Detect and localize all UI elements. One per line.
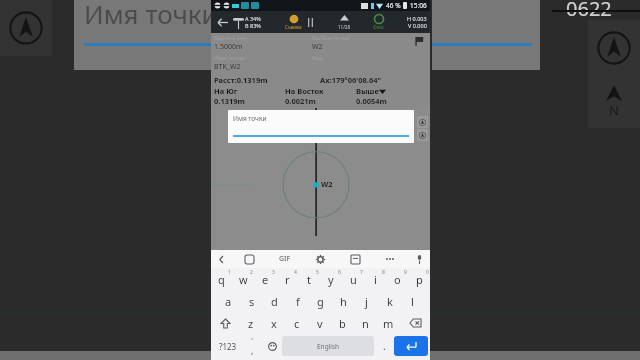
button[interactable]: l — [401, 290, 424, 312]
button[interactable]: Shift — [211, 312, 240, 334]
button[interactable]: e — [254, 268, 276, 290]
staticText: o — [394, 272, 401, 287]
staticText: 2 — [250, 269, 253, 276]
staticText: W2 — [312, 42, 323, 52]
staticText: N — [609, 101, 619, 119]
button[interactable]: f — [286, 290, 309, 312]
button[interactable]: Center on my location — [588, 20, 640, 76]
staticText: 0.0021m — [285, 96, 356, 106]
staticText: a — [225, 294, 232, 309]
button[interactable]: Emoji — [262, 336, 282, 356]
staticText: 7 — [360, 269, 363, 276]
staticText: Фикс — [373, 24, 384, 30]
staticText: 11/28 — [338, 24, 350, 30]
button[interactable]: c — [285, 312, 308, 334]
staticText: 6 — [338, 269, 341, 276]
staticText: B 83% — [245, 22, 261, 29]
button[interactable]: r — [276, 268, 298, 290]
staticText: ?123 — [219, 341, 237, 352]
button[interactable]: English — [282, 336, 374, 356]
staticText: На Восток — [285, 86, 356, 96]
button[interactable]: Period — [374, 336, 394, 356]
staticText: Высота ант. — [214, 34, 248, 42]
staticText: . — [383, 339, 386, 353]
staticText: k — [387, 294, 393, 309]
button[interactable]: ?123 — [213, 336, 242, 356]
staticText: p — [416, 272, 423, 287]
button[interactable]: North up — [588, 76, 640, 128]
button[interactable]: j — [355, 290, 378, 312]
button[interactable]: v — [308, 312, 331, 334]
staticText: x — [271, 316, 277, 331]
button[interactable]: u — [342, 268, 364, 290]
button[interactable]: GIF — [267, 250, 303, 268]
button[interactable]: m — [377, 312, 400, 334]
button[interactable]: o — [386, 268, 408, 290]
staticText: На Юг — [214, 86, 285, 96]
staticText: r — [285, 272, 290, 287]
staticText: W2 — [321, 179, 333, 189]
staticText: 5 — [316, 269, 319, 276]
button[interactable]: Enter — [394, 336, 428, 356]
button[interactable]: Settings — [303, 250, 338, 268]
button[interactable]: t — [298, 268, 320, 290]
button[interactable]: Hide toolbar — [211, 250, 231, 268]
staticText: g — [317, 294, 324, 309]
button[interactable]: s — [240, 290, 263, 312]
button[interactable]: a — [217, 290, 240, 312]
button[interactable]: y — [320, 268, 342, 290]
staticText: u — [350, 272, 357, 287]
staticText: Имя точки — [233, 114, 267, 123]
staticText: j — [365, 294, 368, 309]
staticText: GIF — [279, 254, 291, 264]
button[interactable]: g — [309, 290, 332, 312]
button[interactable]: Clipboard — [338, 250, 373, 268]
staticText: 9 — [404, 269, 407, 276]
button[interactable]: Center on my location — [0, 0, 52, 56]
staticText: Выше — [356, 86, 379, 96]
staticText: i — [374, 272, 377, 287]
button[interactable]: Survey mode — [285, 14, 302, 30]
staticText: q — [218, 272, 225, 287]
staticText: z — [248, 316, 254, 331]
button[interactable]: q — [211, 268, 232, 290]
button[interactable]: z — [240, 312, 262, 334]
button[interactable]: h — [332, 290, 355, 312]
button[interactable]: Comma — [242, 336, 262, 356]
button[interactable]: Center on my location — [417, 116, 428, 128]
staticText: h — [340, 294, 347, 309]
staticText: 46 % — [386, 1, 401, 10]
button[interactable]: Backspace — [400, 312, 430, 334]
staticText: 1 — [228, 269, 231, 276]
staticText: v — [317, 316, 323, 331]
button[interactable]: p — [408, 268, 430, 290]
staticText: 15:06 — [410, 1, 427, 10]
staticText: Код — [312, 54, 323, 62]
button[interactable]: n — [354, 312, 377, 334]
button[interactable]: Select point — [411, 34, 427, 48]
button[interactable]: Back — [211, 11, 233, 33]
button[interactable]: b — [331, 312, 354, 334]
staticText: 0.0054m — [356, 96, 427, 106]
staticText: l — [411, 294, 414, 309]
button[interactable]: More options — [373, 250, 408, 268]
button[interactable]: Fix status — [373, 14, 384, 30]
button[interactable]: North up — [417, 129, 428, 141]
button[interactable]: w — [232, 268, 254, 290]
staticText: w — [239, 272, 248, 287]
button[interactable]: i — [364, 268, 386, 290]
button[interactable]: Satellites — [338, 15, 350, 30]
staticText: 8 — [382, 269, 385, 276]
button[interactable]: k — [378, 290, 401, 312]
staticText: b — [339, 316, 346, 331]
button[interactable]: Voice input — [408, 250, 430, 268]
staticText: s — [249, 294, 255, 309]
button[interactable]: Stickers — [231, 250, 267, 268]
staticText: Расст:0.1319m — [214, 75, 320, 85]
staticText: , — [251, 344, 254, 356]
staticText: m — [383, 316, 394, 331]
button[interactable]: x — [262, 312, 285, 334]
staticText: ° — [251, 336, 254, 344]
button[interactable]: d — [263, 290, 286, 312]
